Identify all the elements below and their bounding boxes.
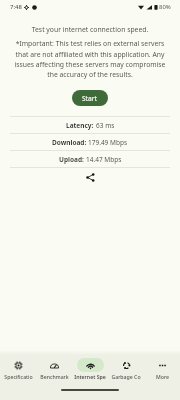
- button[interactable]: More: [144, 355, 180, 380]
- staticText: 80%: [159, 3, 171, 11]
- button[interactable]: Latency:: [10, 117, 170, 133]
- button[interactable]: Benchmark: [36, 355, 72, 380]
- staticText: Specificatio: [4, 373, 33, 380]
- staticText: Download:: [52, 138, 88, 147]
- button[interactable]: Share: [82, 169, 98, 185]
- staticText: 14.47 Mbps: [86, 155, 122, 164]
- staticText: 63 ms: [96, 121, 115, 130]
- staticText: *Important: This test relies on external…: [11, 39, 169, 79]
- staticText: Start: [82, 94, 98, 103]
- staticText: Garbage Co: [111, 373, 141, 380]
- staticText: 7:48: [10, 3, 22, 11]
- staticText: Latency:: [66, 121, 96, 130]
- staticText: Test your internet connection speed.: [0, 25, 180, 34]
- staticText: 179.49 Mbps: [88, 138, 128, 147]
- staticText: Upload:: [59, 155, 86, 164]
- button[interactable]: Download:: [10, 134, 170, 150]
- button[interactable]: Garbage Co: [108, 355, 144, 380]
- staticText: More: [156, 373, 169, 380]
- button[interactable]: Specificatio: [0, 355, 36, 380]
- button[interactable]: Upload:: [10, 151, 170, 167]
- staticText: Benchmark: [40, 373, 69, 380]
- staticText: Internet Spe: [74, 373, 106, 380]
- button[interactable]: Internet Spe: [72, 355, 108, 380]
- button[interactable]: Start: [72, 90, 108, 106]
